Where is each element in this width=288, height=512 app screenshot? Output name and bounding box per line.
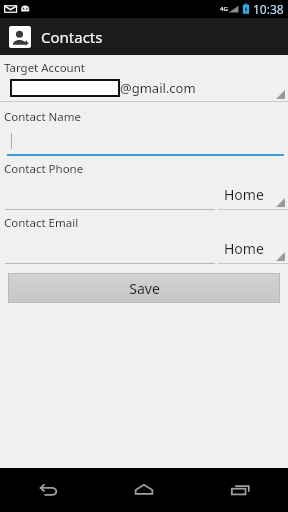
staticText: Save (129, 279, 160, 298)
staticText: Contact Name (4, 109, 82, 125)
staticText: Target Account (4, 60, 85, 76)
button[interactable]: Home (218, 182, 288, 210)
staticText: Home (224, 185, 264, 204)
button[interactable]: @gmail.com (0, 78, 288, 102)
staticText: 10:38 (253, 1, 284, 17)
button[interactable]: Home (218, 236, 288, 264)
button[interactable]: App icon (9, 26, 31, 48)
staticText: Contacts (41, 27, 103, 47)
button[interactable] (0, 127, 288, 156)
staticText: Contact Phone (4, 161, 84, 177)
staticText: 4G (220, 5, 228, 13)
staticText: @gmail.com (120, 79, 196, 97)
button[interactable]: Back (0, 468, 96, 512)
button[interactable]: Save (8, 273, 280, 303)
button[interactable]: Recent apps (192, 468, 288, 512)
button[interactable]: Home (96, 468, 192, 512)
staticText: Contact Email (4, 215, 79, 231)
staticText: Home (224, 239, 264, 258)
